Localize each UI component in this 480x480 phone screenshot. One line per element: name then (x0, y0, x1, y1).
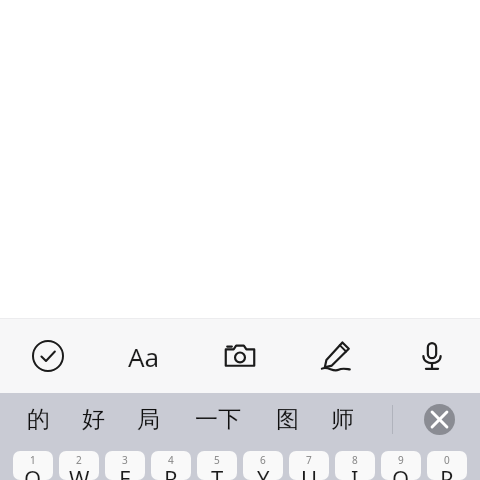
staticText: 0 (444, 453, 450, 467)
button[interactable]: Camera (192, 319, 288, 393)
button[interactable]: Voice input (384, 319, 480, 393)
staticText: U (301, 463, 318, 480)
button[interactable]: 一下 (185, 393, 251, 446)
staticText: 好 (82, 405, 105, 434)
button[interactable]: 图 (264, 393, 310, 446)
staticText: 7 (306, 453, 312, 467)
staticText: I (351, 463, 359, 480)
staticText: 图 (276, 405, 299, 434)
button[interactable]: 5 (197, 451, 237, 480)
button[interactable]: 好 (70, 393, 116, 446)
button[interactable]: 9 (381, 451, 421, 480)
button[interactable]: 1 (13, 451, 53, 480)
staticText: 6 (260, 453, 266, 467)
staticText: T (211, 463, 224, 480)
button[interactable]: 7 (289, 451, 329, 480)
button[interactable]: Close suggestions (424, 404, 455, 435)
staticText: 2 (76, 453, 82, 467)
staticText: E (119, 463, 132, 480)
staticText: Y (257, 463, 270, 480)
button[interactable]: 6 (243, 451, 283, 480)
staticText: R (164, 463, 178, 480)
staticText: 8 (352, 453, 358, 467)
staticText: Q (24, 463, 42, 480)
button[interactable]: 4 (151, 451, 191, 480)
staticText: 9 (398, 453, 404, 467)
staticText: W (69, 463, 90, 480)
button[interactable]: 8 (335, 451, 375, 480)
button[interactable]: 0 (427, 451, 467, 480)
staticText: 5 (214, 453, 220, 467)
button[interactable]: 师 (319, 393, 365, 446)
staticText: 师 (331, 405, 354, 434)
staticText: 3 (122, 453, 128, 467)
staticText: P (440, 463, 454, 480)
button[interactable]: Confirm (0, 319, 96, 393)
button[interactable]: 3 (105, 451, 145, 480)
staticText: Aa (128, 339, 160, 374)
staticText: O (392, 463, 410, 480)
button[interactable]: Text formatting (96, 319, 192, 393)
staticText: 的 (27, 405, 50, 434)
button[interactable]: 局 (125, 393, 171, 446)
button[interactable]: Handwriting (288, 319, 384, 393)
staticText: 4 (168, 453, 174, 467)
button[interactable]: 2 (59, 451, 99, 480)
staticText: 1 (30, 453, 36, 467)
button[interactable]: 的 (15, 393, 61, 446)
staticText: 一下 (195, 405, 241, 434)
staticText: 局 (137, 405, 160, 434)
